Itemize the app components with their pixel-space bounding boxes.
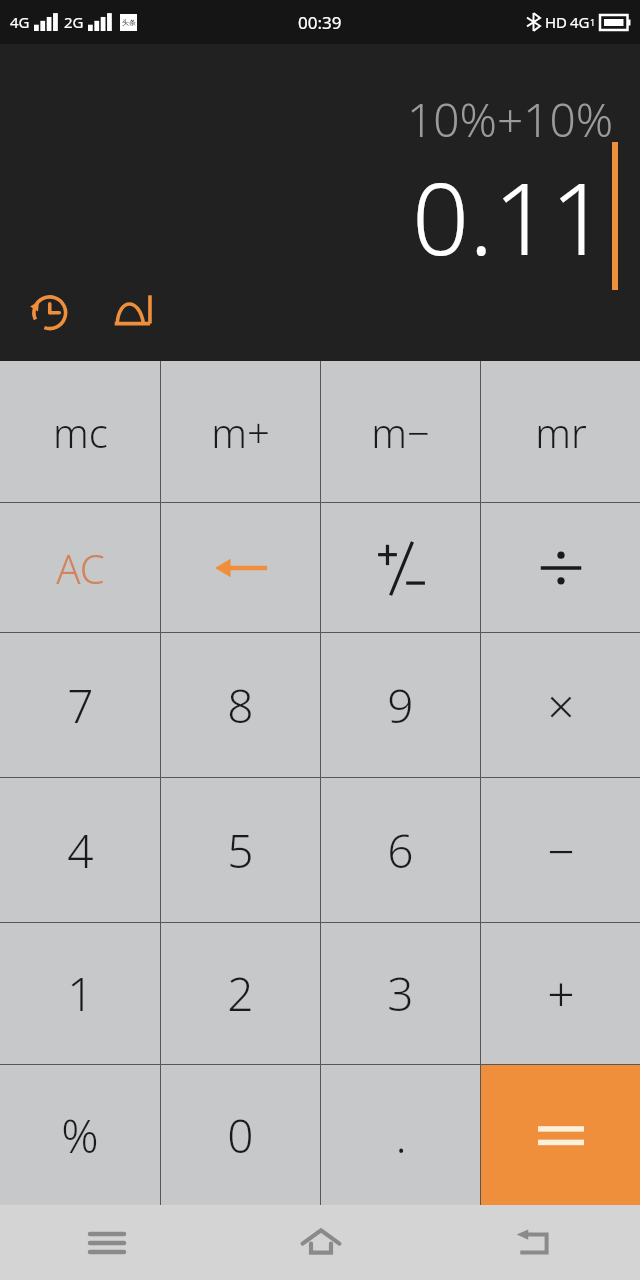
staticText: − xyxy=(547,818,575,883)
staticText: HD xyxy=(545,12,568,32)
button[interactable]: 6 xyxy=(321,778,480,922)
staticText: + xyxy=(547,961,575,1026)
staticText: 0.11 xyxy=(412,148,608,284)
button[interactable]: Home xyxy=(214,1205,427,1280)
button[interactable]: Backspace xyxy=(161,503,320,632)
staticText: AC xyxy=(56,541,105,595)
staticText: 8 xyxy=(227,674,254,737)
button[interactable]: m+ xyxy=(161,361,320,502)
staticText: . xyxy=(395,1104,407,1167)
staticText: 00:39 xyxy=(298,11,342,34)
button[interactable]: AC xyxy=(0,503,160,632)
staticText: m+ xyxy=(211,405,270,459)
button[interactable]: 5 xyxy=(161,778,320,922)
staticText: 4G xyxy=(570,12,590,32)
button[interactable]: 2 xyxy=(161,923,320,1064)
staticText: 6 xyxy=(387,819,414,882)
staticText: 5 xyxy=(227,819,254,882)
staticText: mc xyxy=(53,405,108,459)
button[interactable]: . xyxy=(321,1065,480,1205)
button[interactable]: History xyxy=(20,283,76,339)
button[interactable]: mc xyxy=(0,361,160,502)
staticText: 9 xyxy=(387,674,414,737)
button[interactable]: 4 xyxy=(0,778,160,922)
button[interactable]: 8 xyxy=(161,633,320,777)
staticText: 10%+10% xyxy=(407,88,614,151)
button[interactable]: m− xyxy=(321,361,480,502)
staticText: mr xyxy=(535,405,587,459)
staticText: m− xyxy=(371,405,430,459)
button[interactable]: 7 xyxy=(0,633,160,777)
staticText: 0 xyxy=(227,1104,254,1167)
staticText: 1 xyxy=(67,962,94,1025)
staticText: 3 xyxy=(387,962,414,1025)
staticText: 2G xyxy=(64,12,84,32)
staticText: 4G xyxy=(10,12,30,32)
staticText: % xyxy=(61,1104,99,1167)
button[interactable]: × xyxy=(481,633,640,777)
button[interactable]: + xyxy=(481,923,640,1064)
staticText: × xyxy=(547,673,575,738)
staticText: 2 xyxy=(227,962,254,1025)
staticText: 4 xyxy=(67,819,94,882)
button[interactable]: Back xyxy=(427,1205,640,1280)
button[interactable]: Menu xyxy=(0,1205,214,1280)
button[interactable]: % xyxy=(0,1065,160,1205)
staticText: 头条 xyxy=(122,18,136,27)
button[interactable]: − xyxy=(481,778,640,922)
button[interactable]: Graph xyxy=(106,283,162,339)
button[interactable]: Plus minus xyxy=(321,503,480,632)
staticText: 1 xyxy=(590,16,596,28)
button[interactable]: 1 xyxy=(0,923,160,1064)
button[interactable]: Equals xyxy=(481,1065,640,1205)
button[interactable]: Divide xyxy=(481,503,640,632)
button[interactable]: mr xyxy=(481,361,640,502)
staticText: 7 xyxy=(67,674,94,737)
button[interactable]: 3 xyxy=(321,923,480,1064)
button[interactable]: 0 xyxy=(161,1065,320,1205)
button[interactable]: 9 xyxy=(321,633,480,777)
